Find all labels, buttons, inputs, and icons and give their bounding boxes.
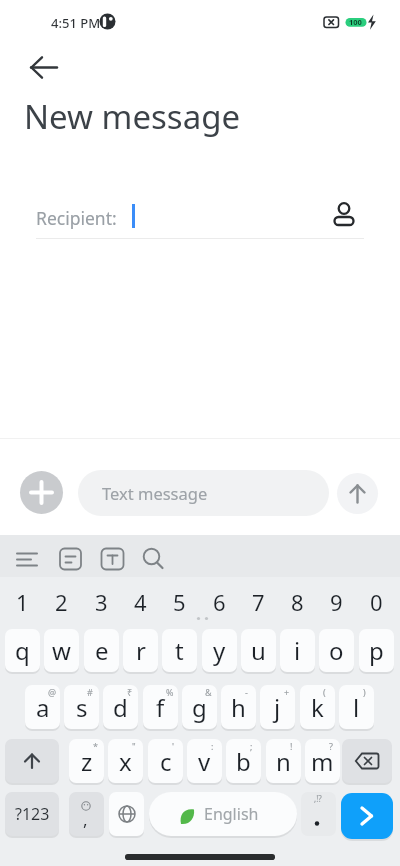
- button[interactable]: h: [221, 685, 256, 729]
- staticText: 0: [370, 587, 383, 617]
- staticText: v: [198, 745, 211, 778]
- staticText: r: [136, 634, 146, 667]
- button[interactable]: [136, 543, 170, 575]
- button[interactable]: u: [241, 629, 276, 672]
- button[interactable]: y: [202, 629, 237, 672]
- button[interactable]: k: [300, 685, 335, 729]
- button[interactable]: [22, 55, 66, 81]
- staticText: Recipient:: [36, 206, 117, 230]
- staticText: (: [323, 686, 326, 698]
- button[interactable]: 3: [84, 583, 119, 621]
- button[interactable]: v: [187, 739, 222, 783]
- staticText: -: [245, 686, 248, 698]
- button[interactable]: [326, 194, 362, 234]
- staticText: ;: [250, 740, 253, 752]
- staticText: 4:51 PM: [51, 14, 101, 32]
- button[interactable]: [337, 473, 378, 514]
- staticText: %: [166, 686, 174, 698]
- staticText: Text message: [102, 482, 208, 504]
- button[interactable]: r: [123, 629, 158, 672]
- button[interactable]: m: [305, 739, 340, 783]
- staticText: 8: [291, 587, 304, 617]
- button[interactable]: l: [339, 685, 374, 729]
- staticText: p: [369, 634, 384, 667]
- staticText: ": [132, 740, 136, 752]
- staticText: 9: [330, 587, 343, 617]
- staticText: g: [192, 691, 207, 724]
- button[interactable]: f: [143, 685, 178, 729]
- button[interactable]: q: [5, 629, 40, 672]
- staticText: 4: [134, 587, 147, 617]
- staticText: m: [311, 745, 334, 778]
- button[interactable]: 8: [280, 583, 315, 621]
- button[interactable]: [149, 792, 297, 836]
- button[interactable]: ?123: [5, 792, 59, 836]
- button[interactable]: g: [182, 685, 217, 729]
- button[interactable]: s: [64, 685, 99, 729]
- staticText: ,: [83, 808, 88, 831]
- staticText: q: [15, 634, 30, 667]
- button[interactable]: z: [69, 739, 104, 783]
- button[interactable]: b: [226, 739, 261, 783]
- button[interactable]: [342, 739, 392, 783]
- button[interactable]: 2: [44, 583, 79, 621]
- staticText: d: [113, 691, 128, 724]
- staticText: ): [363, 686, 366, 698]
- staticText: f: [156, 691, 165, 724]
- staticText: 5: [173, 587, 186, 617]
- button[interactable]: [301, 792, 336, 836]
- staticText: w: [52, 634, 71, 667]
- button[interactable]: p: [359, 629, 394, 672]
- button[interactable]: [125, 854, 275, 860]
- staticText: 1: [16, 587, 29, 617]
- button[interactable]: d: [103, 685, 138, 729]
- staticText: t: [175, 634, 184, 667]
- staticText: y: [213, 634, 226, 667]
- button[interactable]: 9: [319, 583, 354, 621]
- staticText: 100: [349, 17, 362, 27]
- staticText: b: [236, 745, 251, 778]
- button[interactable]: 5: [162, 583, 197, 621]
- button[interactable]: j: [260, 685, 295, 729]
- staticText: e: [95, 634, 109, 667]
- button[interactable]: n: [266, 739, 301, 783]
- staticText: *: [93, 740, 98, 752]
- staticText: English: [204, 803, 259, 825]
- staticText: o: [329, 634, 344, 667]
- staticText: j: [274, 691, 281, 724]
- button[interactable]: [10, 543, 44, 575]
- button[interactable]: [69, 792, 104, 836]
- staticText: 7: [252, 587, 265, 617]
- button[interactable]: x: [108, 739, 143, 783]
- staticText: 2: [55, 587, 68, 617]
- button[interactable]: w: [44, 629, 79, 672]
- staticText: 6: [213, 587, 226, 617]
- staticText: x: [119, 745, 132, 778]
- button[interactable]: a: [25, 685, 60, 729]
- button[interactable]: [341, 793, 393, 839]
- button[interactable]: 6: [202, 583, 237, 621]
- button[interactable]: e: [84, 629, 119, 672]
- button[interactable]: [0, 196, 400, 242]
- button[interactable]: [54, 543, 88, 575]
- button[interactable]: [95, 543, 129, 575]
- staticText: s: [76, 691, 88, 724]
- staticText: i: [294, 634, 301, 667]
- button[interactable]: [109, 792, 144, 836]
- button[interactable]: c: [148, 739, 183, 783]
- button[interactable]: t: [162, 629, 197, 672]
- button[interactable]: 1: [5, 583, 40, 621]
- button[interactable]: i: [280, 629, 315, 672]
- staticText: k: [311, 691, 324, 724]
- staticText: &: [205, 686, 212, 698]
- button[interactable]: Text message: [78, 470, 329, 516]
- staticText: n: [276, 745, 291, 778]
- staticText: ₹: [127, 686, 133, 698]
- button[interactable]: [5, 739, 59, 783]
- button[interactable]: 4: [123, 583, 158, 621]
- staticText: !: [290, 740, 293, 752]
- button[interactable]: 0: [359, 583, 394, 621]
- button[interactable]: [20, 471, 63, 514]
- button[interactable]: 7: [241, 583, 276, 621]
- button[interactable]: o: [319, 629, 354, 672]
